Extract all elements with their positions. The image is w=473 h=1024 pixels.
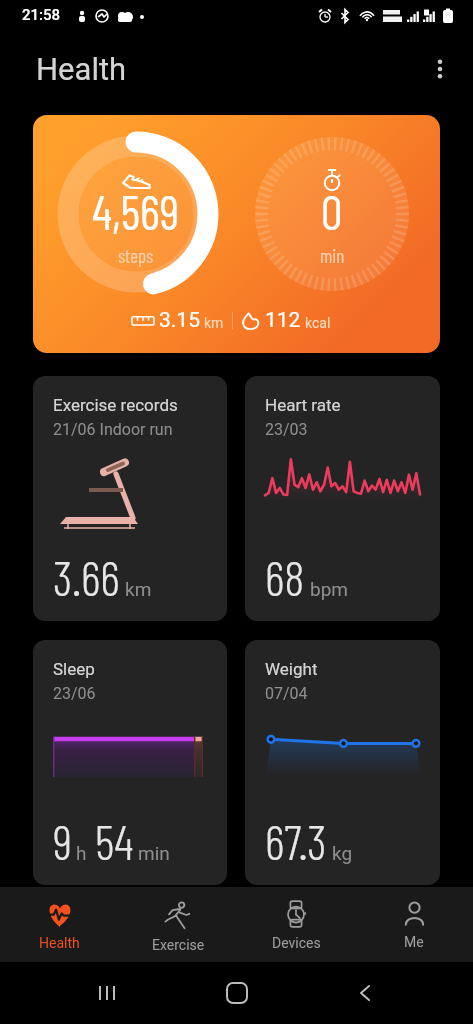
- staticText: 07/04: [265, 684, 308, 703]
- staticText: km: [125, 578, 152, 600]
- button[interactable]: Exercise records: [33, 376, 227, 621]
- button[interactable]: Health: [0, 887, 119, 951]
- staticText: Exercise records: [53, 395, 178, 415]
- staticText: 23/03: [265, 420, 308, 439]
- staticText: 54: [95, 812, 134, 870]
- staticText: min: [138, 842, 170, 864]
- staticText: 3.66: [53, 548, 120, 606]
- staticText: Health: [39, 935, 80, 951]
- staticText: Exercise: [152, 937, 205, 953]
- button[interactable]: 4,569: [33, 115, 440, 353]
- staticText: km: [204, 315, 224, 331]
- staticText: kg: [332, 842, 353, 864]
- button[interactable]: Heart rate: [245, 376, 440, 621]
- button[interactable]: Weight: [245, 640, 440, 885]
- staticText: Sleep: [53, 659, 95, 679]
- staticText: 21/06 Indoor run: [53, 420, 173, 439]
- button[interactable]: Exercise: [119, 887, 237, 953]
- staticText: steps: [118, 244, 154, 267]
- staticText: min: [320, 244, 345, 267]
- staticText: 23/06: [53, 684, 96, 703]
- staticText: 4,569: [92, 182, 180, 240]
- staticText: Heart rate: [265, 395, 341, 415]
- button[interactable]: Me: [355, 887, 473, 950]
- button[interactable]: More options: [420, 49, 460, 89]
- button[interactable]: Sleep: [33, 640, 227, 885]
- staticText: Me: [404, 934, 424, 950]
- staticText: 67.3: [265, 812, 327, 870]
- staticText: 0: [321, 182, 343, 240]
- button[interactable]: Home: [215, 971, 259, 1015]
- staticText: bpm: [310, 578, 348, 600]
- staticText: Devices: [272, 935, 321, 951]
- staticText: kcal: [305, 315, 331, 331]
- staticText: 3.15: [159, 308, 200, 333]
- staticText: 21:58: [22, 6, 61, 24]
- staticText: 9: [53, 812, 72, 870]
- staticText: 68: [265, 548, 305, 606]
- staticText: Health: [36, 51, 127, 87]
- button[interactable]: Recents: [85, 971, 129, 1015]
- button[interactable]: Devices: [237, 887, 355, 951]
- staticText: 112: [265, 308, 301, 333]
- button[interactable]: Back: [344, 971, 388, 1015]
- staticText: Weight: [265, 659, 318, 679]
- staticText: h: [76, 842, 87, 864]
